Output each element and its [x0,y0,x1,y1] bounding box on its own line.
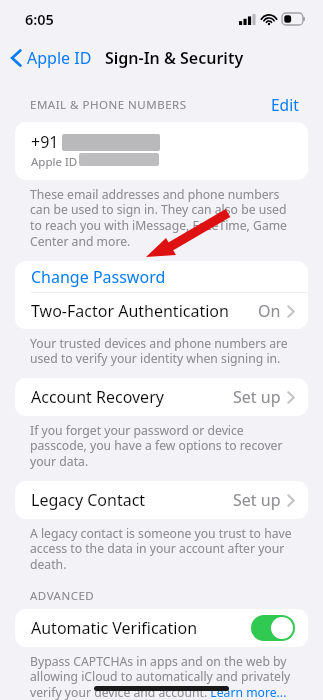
staticText: If you forget your password or device pa… [30,422,299,470]
button[interactable]: Account Recovery [15,378,308,416]
staticText: +91 [31,131,59,153]
button[interactable]: Edit [269,92,301,117]
staticText: 6:05 [25,9,54,29]
staticText: Edit [271,94,299,115]
staticText: Set up [233,489,281,511]
staticText: Apple ID [31,154,78,170]
staticText: Sign-In & Security [105,47,244,69]
staticText: Two-Factor Authentication [31,300,229,322]
button[interactable]: Legacy Contact [15,481,308,519]
staticText: Bypass CAPTCHAs in apps and on the web b… [30,653,299,700]
staticText: Apple ID [27,47,92,69]
button[interactable]: Automatic Verification [15,609,308,647]
staticText: Set up [233,386,281,408]
staticText: Legacy Contact [31,489,146,511]
button[interactable]: Apple ID [0,43,98,73]
button[interactable]: Two-Factor Authentication [15,293,308,329]
other: Automatic Verification toggle, on [251,615,295,641]
staticText: Change Password [31,266,166,288]
staticText: EMAIL & PHONE NUMBERS [30,97,187,113]
staticText: Automatic Verification [31,617,198,639]
staticText: These email addresses and phone numbers … [30,186,299,250]
staticText: Account Recovery [31,386,164,408]
staticText: Your trusted devices and phone numbers a… [30,335,299,367]
staticText: On [258,300,281,322]
button[interactable]: Change Password [15,261,308,292]
staticText: ADVANCED [30,588,95,604]
button[interactable]: +91 [15,122,308,180]
staticText: A legacy contact is someone you trust to… [30,525,299,573]
